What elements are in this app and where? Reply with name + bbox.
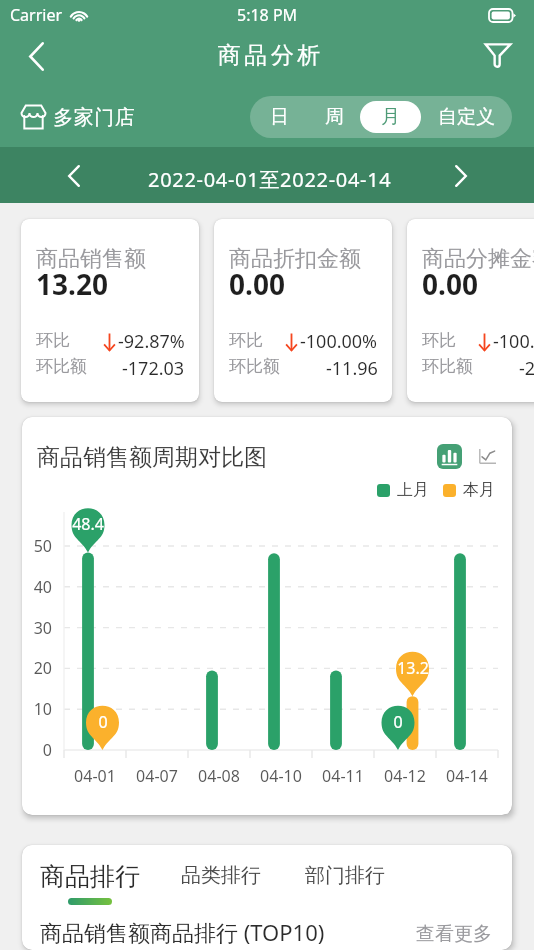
button[interactable]: 自定义 xyxy=(421,101,512,133)
button[interactable]: Filter xyxy=(476,33,520,77)
staticText: 月 xyxy=(381,105,400,129)
staticText: 0 xyxy=(42,739,52,761)
button[interactable]: 商品排行 xyxy=(40,861,140,905)
staticText: 30 xyxy=(33,617,52,639)
staticText: 40 xyxy=(33,576,52,598)
staticText: 品类排行 xyxy=(181,863,261,888)
staticText: -11.96 xyxy=(326,356,378,381)
staticText: 0 xyxy=(98,711,108,733)
staticText: 50 xyxy=(33,535,52,557)
staticText: 商品销售额商品排行 (TOP10) xyxy=(40,917,325,947)
staticText: 日 xyxy=(270,105,289,129)
button[interactable]: 查看更多 xyxy=(416,922,492,946)
button[interactable]: 商品销售额 xyxy=(21,219,199,402)
staticText: 04-12 xyxy=(384,765,426,785)
staticText: 04-01 xyxy=(74,765,116,785)
staticText: 环比 xyxy=(36,330,70,351)
staticText: 商品销售额 xyxy=(36,245,146,273)
button[interactable]: 多家门店 xyxy=(20,104,135,130)
staticText: 商品折扣金额 xyxy=(229,245,361,273)
button[interactable]: 品类排行 xyxy=(181,863,261,888)
button[interactable]: 周 xyxy=(308,101,360,133)
staticText: 04-07 xyxy=(136,765,178,785)
button[interactable]: 月 xyxy=(360,101,421,133)
staticText: 商品分摊金额 xyxy=(422,245,534,273)
staticText: 上月 xyxy=(397,480,429,500)
staticText: 多家门店 xyxy=(53,105,135,130)
staticText: -100.00% xyxy=(493,329,534,354)
button[interactable]: Bar chart xyxy=(437,444,462,469)
staticText: 查看更多 xyxy=(416,922,492,946)
button[interactable]: Back xyxy=(12,32,60,80)
staticText: 04-14 xyxy=(446,765,488,785)
staticText: 0.00 xyxy=(422,265,478,303)
staticText: 13.2 xyxy=(397,657,429,679)
staticText: -172.03 xyxy=(122,356,185,381)
button[interactable]: Line chart xyxy=(472,441,503,472)
staticText: 04-11 xyxy=(322,765,364,785)
staticText: 04-08 xyxy=(198,765,240,785)
staticText: 商品销售额周期对比图 xyxy=(37,443,267,472)
staticText: 0 xyxy=(393,711,403,733)
staticText: 环比额 xyxy=(422,356,473,377)
staticText: 环比 xyxy=(422,330,456,351)
staticText: 部门排行 xyxy=(305,863,385,888)
staticText: 10 xyxy=(33,698,52,720)
staticText: 20 xyxy=(33,657,52,679)
staticText: Carrier xyxy=(10,4,63,26)
button[interactable]: 商品分摊金额 xyxy=(407,219,534,402)
staticText: -100.00% xyxy=(300,329,378,354)
staticText: 0.00 xyxy=(229,265,285,303)
staticText: 13.20 xyxy=(36,265,108,303)
button[interactable]: 部门排行 xyxy=(305,863,385,888)
staticText: 商品分析 xyxy=(216,41,322,70)
staticText: 环比额 xyxy=(36,356,87,377)
staticText: 2022-04-01至2022-04-14 xyxy=(148,166,392,193)
staticText: -28.56 xyxy=(519,356,534,381)
staticText: 本月 xyxy=(463,480,495,500)
staticText: 04-10 xyxy=(260,765,302,785)
button[interactable]: Previous period xyxy=(53,155,94,196)
staticText: 48.4 xyxy=(72,513,104,535)
button[interactable]: 商品折扣金额 xyxy=(214,219,392,402)
staticText: 环比 xyxy=(229,330,263,351)
button[interactable]: 日 xyxy=(250,101,308,133)
staticText: -92.87% xyxy=(118,329,185,354)
button[interactable]: Next period xyxy=(440,155,481,196)
staticText: 自定义 xyxy=(438,105,495,129)
staticText: 5:18 PM xyxy=(237,4,298,26)
staticText: 周 xyxy=(325,105,344,129)
staticText: 商品排行 xyxy=(40,861,140,892)
staticText: 环比额 xyxy=(229,356,280,377)
